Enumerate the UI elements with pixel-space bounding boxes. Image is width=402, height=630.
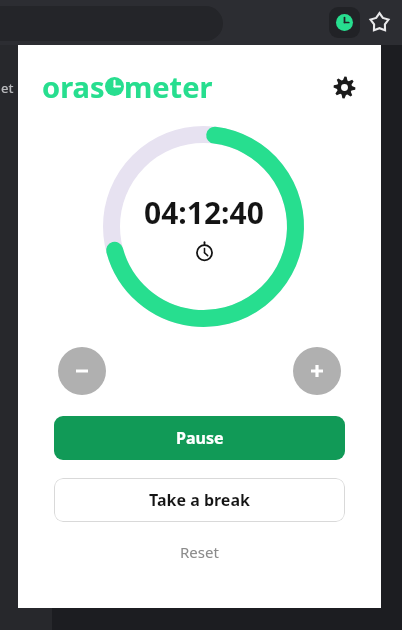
- button[interactable]: Settings: [327, 70, 361, 104]
- staticText: et: [1, 79, 14, 97]
- button[interactable]: Pause: [54, 416, 345, 460]
- staticText: Reset: [180, 542, 219, 562]
- button[interactable]: Remove time: [58, 347, 106, 395]
- button[interactable]: Extensions: [364, 7, 395, 38]
- staticText: oras: [42, 67, 105, 106]
- staticText: Take a break: [149, 489, 250, 511]
- button[interactable]: Orasometer: [329, 7, 360, 38]
- button[interactable]: Take a break: [54, 478, 345, 522]
- button[interactable]: Reset: [18, 534, 381, 570]
- button[interactable]: Add time: [293, 347, 341, 395]
- staticText: meter: [124, 67, 213, 106]
- staticText: 04:12:40: [144, 192, 264, 233]
- staticText: Pause: [176, 427, 224, 449]
